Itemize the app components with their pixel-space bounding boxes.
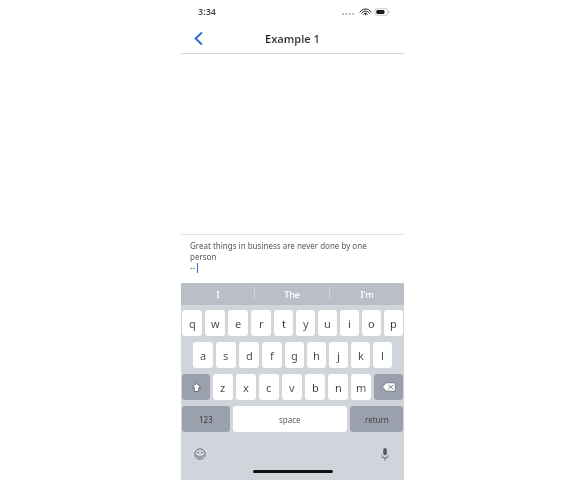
button[interactable]: I'm bbox=[330, 283, 404, 305]
button[interactable]: y bbox=[296, 310, 315, 336]
button[interactable]: f bbox=[262, 342, 282, 368]
staticText: n bbox=[335, 380, 342, 395]
staticText: a bbox=[200, 348, 207, 363]
button[interactable]: u bbox=[318, 310, 337, 336]
button[interactable]: p bbox=[384, 310, 403, 336]
staticText: s bbox=[223, 348, 229, 363]
staticText: I'm bbox=[360, 288, 374, 300]
button[interactable]: j bbox=[329, 342, 348, 368]
staticText: v bbox=[289, 380, 295, 395]
button[interactable]: r bbox=[251, 310, 271, 336]
staticText: I bbox=[216, 288, 220, 300]
staticText: q bbox=[189, 316, 196, 331]
staticText: 3:34 bbox=[198, 5, 216, 17]
button[interactable]: m bbox=[351, 374, 371, 400]
button[interactable]: n bbox=[328, 374, 348, 400]
staticText: p bbox=[390, 316, 397, 331]
staticText: Example 1 bbox=[265, 31, 320, 46]
staticText: 123 bbox=[199, 414, 213, 425]
staticText: u bbox=[324, 316, 331, 331]
staticText: Great things in business are never done … bbox=[190, 240, 367, 251]
button[interactable]: e bbox=[228, 310, 248, 336]
button[interactable]: space bbox=[233, 406, 347, 432]
staticText: e bbox=[235, 316, 242, 331]
button[interactable]: q bbox=[182, 310, 202, 336]
staticText: f bbox=[270, 348, 274, 363]
button[interactable]: The bbox=[255, 283, 329, 305]
button[interactable]: 123 bbox=[182, 406, 230, 432]
staticText: m bbox=[356, 380, 367, 395]
staticText: g bbox=[291, 348, 298, 363]
button[interactable]: a bbox=[193, 342, 213, 368]
button[interactable]: t bbox=[274, 310, 293, 336]
staticText: space bbox=[279, 414, 301, 425]
button[interactable]: i bbox=[340, 310, 359, 336]
button[interactable]: v bbox=[282, 374, 302, 400]
button[interactable]: c bbox=[259, 374, 279, 400]
staticText: t bbox=[282, 316, 286, 331]
staticText: l bbox=[381, 348, 384, 363]
staticText: The bbox=[284, 288, 300, 300]
button[interactable]: o bbox=[362, 310, 381, 336]
staticText: b bbox=[312, 380, 319, 395]
staticText: c bbox=[266, 380, 272, 395]
button[interactable]: b bbox=[305, 374, 325, 400]
staticText: person bbox=[190, 251, 217, 262]
staticText: i bbox=[348, 316, 351, 331]
button[interactable]: Backspace bbox=[374, 374, 403, 400]
button[interactable]: h bbox=[307, 342, 326, 368]
staticText: k bbox=[358, 348, 364, 363]
button[interactable]: s bbox=[216, 342, 236, 368]
button[interactable]: g bbox=[285, 342, 304, 368]
staticText: w bbox=[211, 316, 220, 331]
staticText: j bbox=[337, 348, 340, 363]
button[interactable]: return bbox=[350, 406, 403, 432]
staticText: x bbox=[243, 380, 249, 395]
button[interactable]: Great things in business are never done … bbox=[181, 234, 404, 283]
button[interactable]: k bbox=[351, 342, 370, 368]
staticText: r bbox=[259, 316, 264, 331]
staticText: d bbox=[246, 348, 253, 363]
button[interactable]: l bbox=[373, 342, 392, 368]
button[interactable]: Emoji bbox=[191, 445, 209, 463]
staticText: o bbox=[368, 316, 375, 331]
button[interactable]: x bbox=[236, 374, 256, 400]
staticText: h bbox=[313, 348, 320, 363]
staticText: -- bbox=[190, 262, 196, 273]
button[interactable]: Dictation bbox=[376, 445, 394, 463]
button[interactable]: w bbox=[205, 310, 225, 336]
button[interactable]: d bbox=[239, 342, 259, 368]
button[interactable]: z bbox=[213, 374, 233, 400]
staticText: return bbox=[365, 414, 389, 425]
staticText: z bbox=[220, 380, 226, 395]
staticText: y bbox=[303, 316, 309, 331]
button[interactable]: I bbox=[181, 283, 254, 305]
button[interactable]: Back bbox=[181, 22, 215, 54]
button[interactable]: Shift bbox=[182, 374, 210, 400]
